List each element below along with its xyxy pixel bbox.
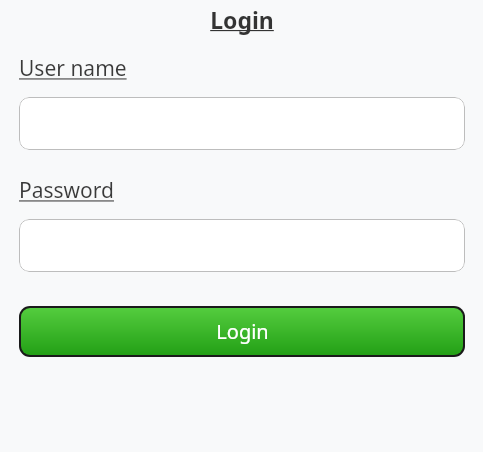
staticText: Password xyxy=(19,176,114,205)
button[interactable] xyxy=(19,97,465,150)
staticText: User name xyxy=(19,54,127,83)
button[interactable]: Login xyxy=(21,308,463,355)
button[interactable] xyxy=(19,219,465,272)
staticText: Login xyxy=(216,318,269,345)
staticText: Login xyxy=(19,4,465,35)
